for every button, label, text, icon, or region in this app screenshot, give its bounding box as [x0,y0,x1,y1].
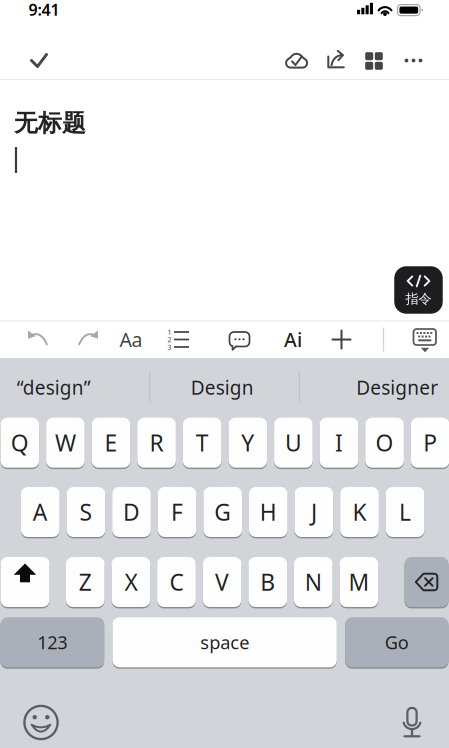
staticText: Go [385,630,409,654]
button[interactable] [390,700,434,744]
button[interactable]: space [112,617,337,667]
staticText: G [214,497,231,527]
staticText: H [260,497,277,527]
button[interactable]: M [340,557,378,607]
button[interactable]: A [21,487,60,537]
button[interactable]: S [67,487,105,537]
staticText: Y [241,428,254,458]
button[interactable] [319,46,351,76]
staticText: E [104,428,117,458]
button[interactable]: 1 [158,322,200,356]
button[interactable]: K [340,487,379,537]
staticText: “design” [17,375,91,400]
button[interactable]: D [112,487,151,537]
button[interactable] [0,557,49,607]
staticText: F [171,497,183,527]
button[interactable]: N [294,557,333,607]
button[interactable] [218,322,260,356]
button[interactable] [358,46,390,76]
staticText: Design [191,375,254,400]
button[interactable]: “design” [0,364,149,410]
button[interactable]: C [157,557,196,607]
staticText: 1 [167,327,171,337]
staticText: K [352,497,366,527]
button[interactable]: Y [228,418,267,468]
button[interactable]: G [203,487,242,537]
button[interactable] [404,321,446,359]
button[interactable] [19,700,63,744]
staticText: T [196,428,209,458]
button[interactable] [404,557,448,607]
staticText: U [285,428,302,458]
button[interactable] [397,45,429,75]
staticText: 9:41 [28,0,59,20]
button[interactable]: 指令 [394,266,443,314]
button[interactable]: O [365,418,404,468]
button[interactable] [22,44,56,76]
button[interactable]: Designer [300,364,449,410]
button[interactable]: Go [345,617,448,667]
staticText: space [200,630,249,654]
button[interactable]: 123 [0,617,104,667]
staticText: L [399,497,411,527]
staticText: X [124,567,137,597]
staticText: 2 [167,335,171,344]
button[interactable] [18,322,60,356]
button[interactable]: Z [66,557,105,607]
staticText: M [348,567,369,597]
button[interactable]: X [112,557,150,607]
staticText: O [376,428,394,458]
button[interactable]: R [137,418,176,468]
button[interactable]: P [411,418,449,468]
button[interactable]: Aa [111,322,151,356]
staticText: N [305,567,322,597]
button[interactable]: E [92,418,130,468]
button[interactable]: W [46,418,85,468]
staticText: P [423,428,437,458]
button[interactable]: Design [150,364,299,410]
staticText: Aa [119,327,142,352]
staticText: C [169,567,183,597]
button[interactable] [66,322,108,356]
staticText: D [123,497,140,527]
button[interactable]: I [320,418,358,468]
staticText: W [55,428,76,458]
button[interactable]: Q [0,418,39,468]
staticText: Z [79,567,92,597]
button[interactable]: Ai [273,322,313,356]
button[interactable]: V [203,557,241,607]
button[interactable]: B [248,557,287,607]
staticText: 3 [167,342,171,352]
button[interactable]: J [295,487,333,537]
staticText: V [215,567,229,597]
button[interactable]: F [158,487,196,537]
staticText: R [150,428,164,458]
staticText: A [33,497,48,527]
staticText: J [311,497,317,527]
button[interactable] [320,322,362,356]
staticText: B [260,567,275,597]
staticText: 123 [37,630,67,654]
staticText: I [335,428,343,458]
staticText: 指令 [405,291,431,307]
button[interactable]: L [386,487,424,537]
button[interactable]: H [249,487,288,537]
staticText: S [79,497,92,527]
button[interactable] [280,46,312,76]
staticText: Ai [284,327,302,352]
button[interactable]: T [183,418,221,468]
staticText: Q [11,428,29,458]
staticText: 无标题 [14,108,86,137]
button[interactable]: U [274,418,313,468]
staticText: Designer [356,375,438,400]
